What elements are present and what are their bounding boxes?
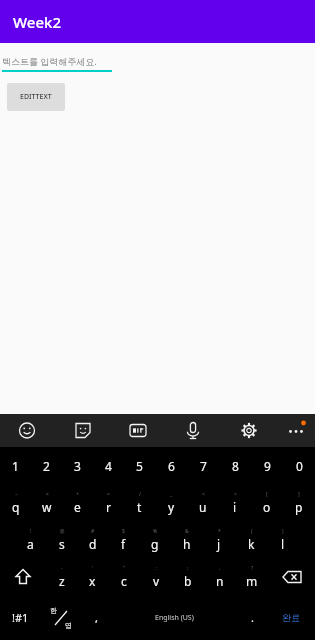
button[interactable]: " <box>108 558 140 595</box>
button[interactable]: ] <box>283 484 315 521</box>
button[interactable]: 9 <box>251 447 283 484</box>
staticText: 완료 <box>282 612 300 623</box>
button[interactable]: * <box>203 521 235 558</box>
staticText: English (US) <box>155 613 194 623</box>
staticText: t <box>137 499 142 515</box>
button[interactable]: 0 <box>283 447 315 484</box>
staticText: p <box>295 499 303 515</box>
button[interactable]: = <box>93 484 124 521</box>
button[interactable]: × <box>31 484 62 521</box>
staticText: 0 <box>296 458 303 474</box>
staticText: [ <box>266 491 268 498</box>
staticText: u <box>199 499 207 515</box>
button[interactable]: < <box>187 484 219 521</box>
staticText: y <box>168 499 175 515</box>
button[interactable]: 완료 <box>267 595 315 640</box>
button[interactable]: , <box>204 558 236 595</box>
staticText: r <box>106 499 111 515</box>
button[interactable]: ' <box>77 558 108 595</box>
button[interactable]: 3 <box>62 447 93 484</box>
staticText: # <box>91 528 95 535</box>
staticText: o <box>263 499 271 515</box>
staticText: > <box>234 491 237 498</box>
staticText: _ <box>170 491 173 498</box>
button[interactable]: 7 <box>187 447 219 484</box>
button[interactable]: Shift <box>0 558 46 595</box>
staticText: e <box>74 499 81 515</box>
button[interactable]: & <box>171 521 203 558</box>
button[interactable]: - <box>46 558 77 595</box>
staticText: x <box>89 573 96 589</box>
button[interactable]: ; <box>172 558 204 595</box>
staticText: @ <box>60 528 65 535</box>
button[interactable]: @ <box>46 521 77 558</box>
staticText: c <box>121 573 127 589</box>
button[interactable]: % <box>139 521 171 558</box>
button[interactable]: + <box>62 484 93 521</box>
staticText: ; <box>187 565 189 572</box>
button[interactable]: 1 <box>0 447 31 484</box>
staticText: 6 <box>168 458 175 474</box>
button[interactable]: ~ <box>0 484 31 521</box>
button[interactable]: ( <box>235 521 267 558</box>
staticText: ) <box>282 528 284 535</box>
button[interactable]: Emoji <box>11 414 43 447</box>
button[interactable]: 4 <box>93 447 124 484</box>
button[interactable]: Settings <box>233 414 265 447</box>
staticText: + <box>76 491 79 498</box>
staticText: ] <box>298 491 300 498</box>
button[interactable]: GIF <box>122 414 154 447</box>
button[interactable]: , <box>81 595 111 640</box>
staticText: ' <box>92 565 94 572</box>
button[interactable]: Korean English toggle <box>40 595 81 640</box>
button[interactable]: 8 <box>219 447 251 484</box>
staticText: f <box>121 536 126 552</box>
staticText: ! <box>30 528 32 535</box>
button[interactable]: !#1 <box>0 595 40 640</box>
staticText: q <box>12 499 20 515</box>
button[interactable]: . <box>237 595 267 640</box>
button[interactable]: Voice input <box>177 414 209 447</box>
button[interactable]: ? <box>236 558 268 595</box>
staticText: 한 <box>50 606 57 615</box>
button[interactable]: Stickers <box>67 414 99 447</box>
staticText: & <box>185 528 189 535</box>
button[interactable]: 5 <box>124 447 155 484</box>
staticText: 4 <box>105 458 112 474</box>
button[interactable]: > <box>219 484 251 521</box>
button[interactable]: EDITTEXT <box>7 83 65 111</box>
staticText: × <box>46 491 49 498</box>
button[interactable]: English (US) <box>111 595 237 640</box>
staticText: 1 <box>12 458 19 474</box>
staticText: h <box>183 536 191 552</box>
button[interactable]: 2 <box>31 447 62 484</box>
button[interactable]: / <box>124 484 155 521</box>
button[interactable]: 6 <box>155 447 187 484</box>
staticText: = <box>107 491 110 498</box>
staticText: , <box>95 610 98 625</box>
button[interactable]: _ <box>155 484 187 521</box>
staticText: z <box>59 573 65 589</box>
button[interactable]: [ <box>251 484 283 521</box>
button[interactable]: 텍스트를 입력해주세요. <box>2 55 112 72</box>
staticText: * <box>218 528 221 535</box>
staticText: 2 <box>43 458 50 474</box>
staticText: ( <box>251 528 253 535</box>
button[interactable]: ! <box>15 521 46 558</box>
staticText: i <box>233 499 237 515</box>
staticText: % <box>153 528 158 535</box>
button[interactable]: # <box>77 521 108 558</box>
staticText: w <box>42 499 52 515</box>
button[interactable]: More options <box>280 414 312 447</box>
staticText: / <box>139 491 141 498</box>
staticText: v <box>153 573 160 589</box>
button[interactable]: Backspace <box>268 558 315 595</box>
staticText: l <box>281 536 285 552</box>
button[interactable]: $ <box>108 521 139 558</box>
button[interactable]: ) <box>267 521 299 558</box>
staticText: !#1 <box>12 610 29 625</box>
staticText: - <box>61 565 63 572</box>
staticText: : <box>156 565 158 572</box>
button[interactable]: : <box>140 558 172 595</box>
staticText: b <box>184 573 192 589</box>
